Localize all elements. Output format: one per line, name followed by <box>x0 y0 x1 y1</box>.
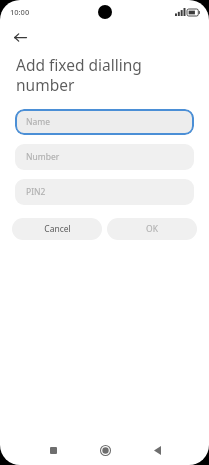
staticText: Add fixed dialling number <box>16 54 193 95</box>
button[interactable]: Name <box>15 109 194 135</box>
staticText: Name <box>26 116 50 128</box>
staticText: PIN2 <box>26 186 46 198</box>
button[interactable]: Recent apps <box>38 435 68 465</box>
staticText: Cancel <box>44 223 71 235</box>
button[interactable]: PIN2 <box>15 179 194 205</box>
staticText: OK <box>146 223 158 235</box>
staticText: Number <box>26 151 60 163</box>
button[interactable]: Back <box>8 25 32 49</box>
staticText: 10:00 <box>10 7 30 17</box>
button[interactable]: Home <box>90 435 120 465</box>
button[interactable]: Cancel <box>12 218 102 240</box>
button[interactable]: Number <box>15 144 194 170</box>
button[interactable]: OK <box>107 218 197 240</box>
button[interactable]: Back <box>142 435 172 465</box>
